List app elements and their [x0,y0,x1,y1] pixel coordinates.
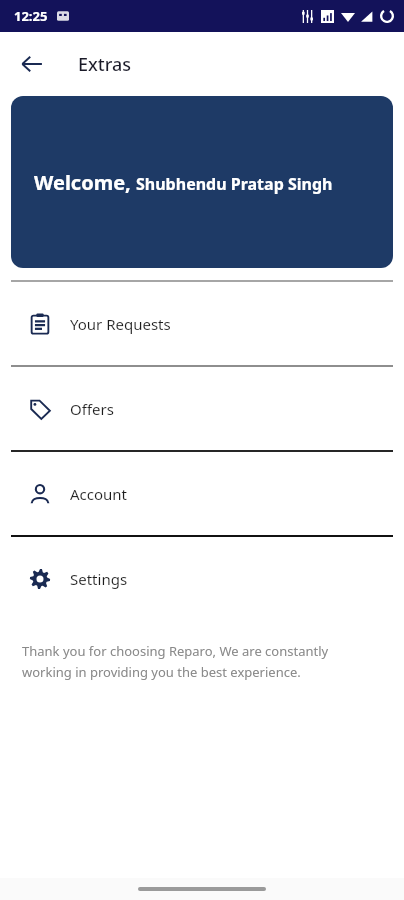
staticText: Your Requests [70,314,171,334]
button[interactable]: Offers [0,367,404,450]
button[interactable]: Settings [0,537,404,620]
staticText: Shubhendu Pratap Singh [136,173,333,195]
staticText: working in providing you the best experi… [22,663,301,681]
button[interactable]: Welcome, [11,96,393,268]
staticText: Account [70,484,128,504]
button[interactable]: Back [10,42,54,86]
staticText: 12:25 [14,7,48,25]
staticText: Offers [70,399,114,419]
staticText: Extras [78,52,131,77]
staticText: Settings [70,569,128,589]
button[interactable]: Your Requests [0,282,404,365]
staticText: Thank you for choosing Reparo, We are co… [22,642,329,660]
staticText: Welcome, [34,169,131,196]
button[interactable]: Account [0,452,404,535]
